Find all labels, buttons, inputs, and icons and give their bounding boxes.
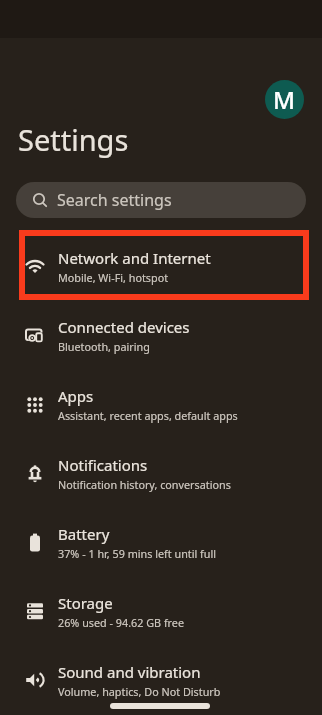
staticText: M (273, 83, 296, 116)
staticText: 37% - 1 hr, 59 mins left until full (58, 546, 217, 561)
staticText: Notification history, conversations (58, 477, 231, 492)
button[interactable]: Notifications (0, 439, 322, 508)
staticText: Sound and vibration (58, 662, 201, 682)
staticText: Settings (18, 120, 129, 159)
staticText: Apps (58, 386, 94, 406)
staticText: Assistant, recent apps, default apps (58, 408, 238, 423)
staticText: Bluetooth, pairing (58, 339, 150, 354)
staticText: Notifications (58, 455, 148, 475)
button[interactable]: Apps (0, 370, 322, 439)
staticText: Search settings (57, 189, 172, 211)
staticText: Storage (58, 593, 113, 613)
staticText: 26% used - 94.62 GB free (58, 615, 185, 630)
staticText: Connected devices (58, 317, 190, 337)
staticText: Mobile, Wi-Fi, hotspot (58, 270, 169, 285)
button[interactable]: Sound and vibration (0, 646, 322, 715)
staticText: Network and Internet (58, 248, 211, 268)
button[interactable]: Network and Internet (0, 232, 322, 301)
button[interactable]: M (265, 80, 304, 119)
button[interactable]: Connected devices (0, 301, 322, 370)
button[interactable]: Storage (0, 577, 322, 646)
button[interactable]: Battery (0, 508, 322, 577)
button[interactable]: Search settings (16, 182, 306, 218)
staticText: Battery (58, 524, 110, 544)
staticText: Volume, haptics, Do Not Disturb (58, 684, 221, 699)
